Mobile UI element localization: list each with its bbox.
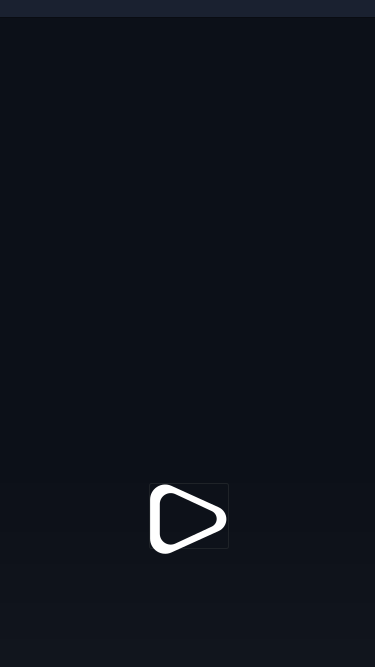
button[interactable]: Play — [149, 483, 228, 548]
